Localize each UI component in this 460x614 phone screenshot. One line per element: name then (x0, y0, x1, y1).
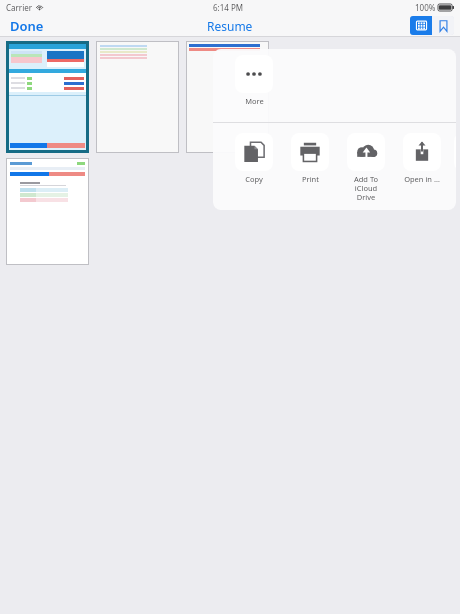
button[interactable] (7, 159, 88, 264)
staticText: More (245, 96, 264, 106)
staticText: Done (10, 17, 44, 35)
button[interactable]: Done (6, 15, 48, 37)
staticText: Open in … (404, 174, 440, 184)
button[interactable] (9, 44, 86, 150)
button[interactable]: Grid view (410, 16, 432, 35)
staticText: 100% (415, 2, 436, 13)
staticText: 6:14 PM (213, 2, 244, 13)
staticText: Print (302, 174, 319, 184)
button[interactable]: Open in (398, 133, 446, 184)
staticText: Copy (245, 174, 263, 184)
staticText: Carrier (6, 2, 33, 13)
button[interactable] (187, 42, 268, 152)
staticText: Add To iCloud Drive (342, 174, 390, 202)
button[interactable]: Bookmarks (432, 16, 454, 35)
button[interactable]: Print (286, 133, 334, 184)
staticText: Resume (207, 18, 253, 34)
button[interactable]: Add To iCloud Drive (342, 133, 390, 202)
button[interactable]: Copy (230, 133, 278, 184)
button[interactable] (97, 42, 178, 152)
button[interactable]: More (230, 55, 278, 106)
